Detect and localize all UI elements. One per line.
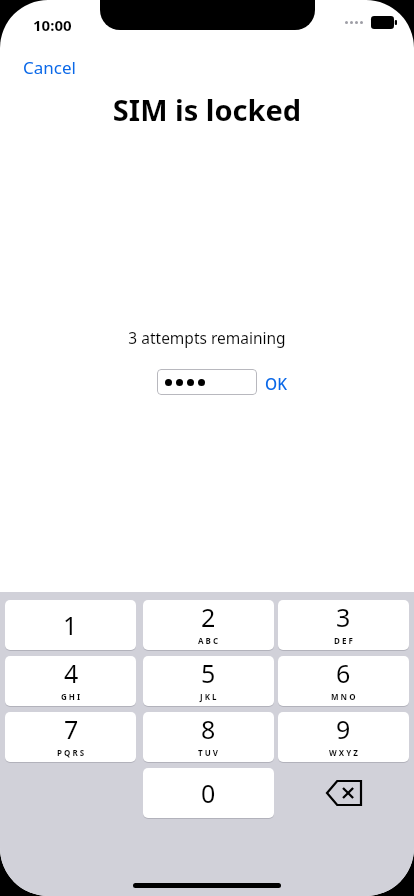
staticText: 6 (336, 656, 351, 690)
staticText: 3 attempts remaining (0, 327, 414, 348)
staticText: 8 (201, 712, 216, 746)
staticText: M N O (331, 691, 356, 702)
staticText: 0 (201, 776, 216, 810)
button[interactable]: 3 (278, 600, 409, 650)
button[interactable]: Backspace (278, 768, 409, 818)
staticText: 1 (63, 608, 78, 642)
staticText: SIM is locked (0, 90, 414, 129)
button[interactable]: 5 (143, 656, 274, 706)
staticText: T U V (198, 747, 219, 758)
staticText: 7 (64, 712, 79, 746)
button[interactable]: 7 (5, 712, 136, 762)
staticText: A B C (198, 635, 219, 646)
staticText: 2 (201, 600, 216, 634)
button[interactable]: 2 (143, 600, 274, 650)
button[interactable] (157, 369, 257, 395)
button[interactable]: 8 (143, 712, 274, 762)
button[interactable]: 6 (278, 656, 409, 706)
staticText: 10:00 (33, 15, 72, 35)
staticText: Cancel (23, 56, 76, 79)
staticText: W X Y Z (329, 747, 358, 758)
staticText: G H I (61, 691, 81, 702)
staticText: OK (265, 373, 287, 394)
button[interactable]: 9 (278, 712, 409, 762)
staticText: 5 (201, 656, 216, 690)
button[interactable]: OK (261, 370, 291, 397)
staticText: 4 (64, 656, 79, 690)
button[interactable]: 0 (143, 768, 274, 818)
button[interactable]: 1 (5, 600, 136, 650)
staticText: D E F (334, 635, 353, 646)
staticText: J K L (200, 691, 217, 702)
staticText: P Q R S (57, 747, 85, 758)
staticText: 9 (336, 712, 351, 746)
staticText: 3 (336, 600, 351, 634)
button[interactable]: 4 (5, 656, 136, 706)
button[interactable]: Cancel (14, 52, 85, 83)
